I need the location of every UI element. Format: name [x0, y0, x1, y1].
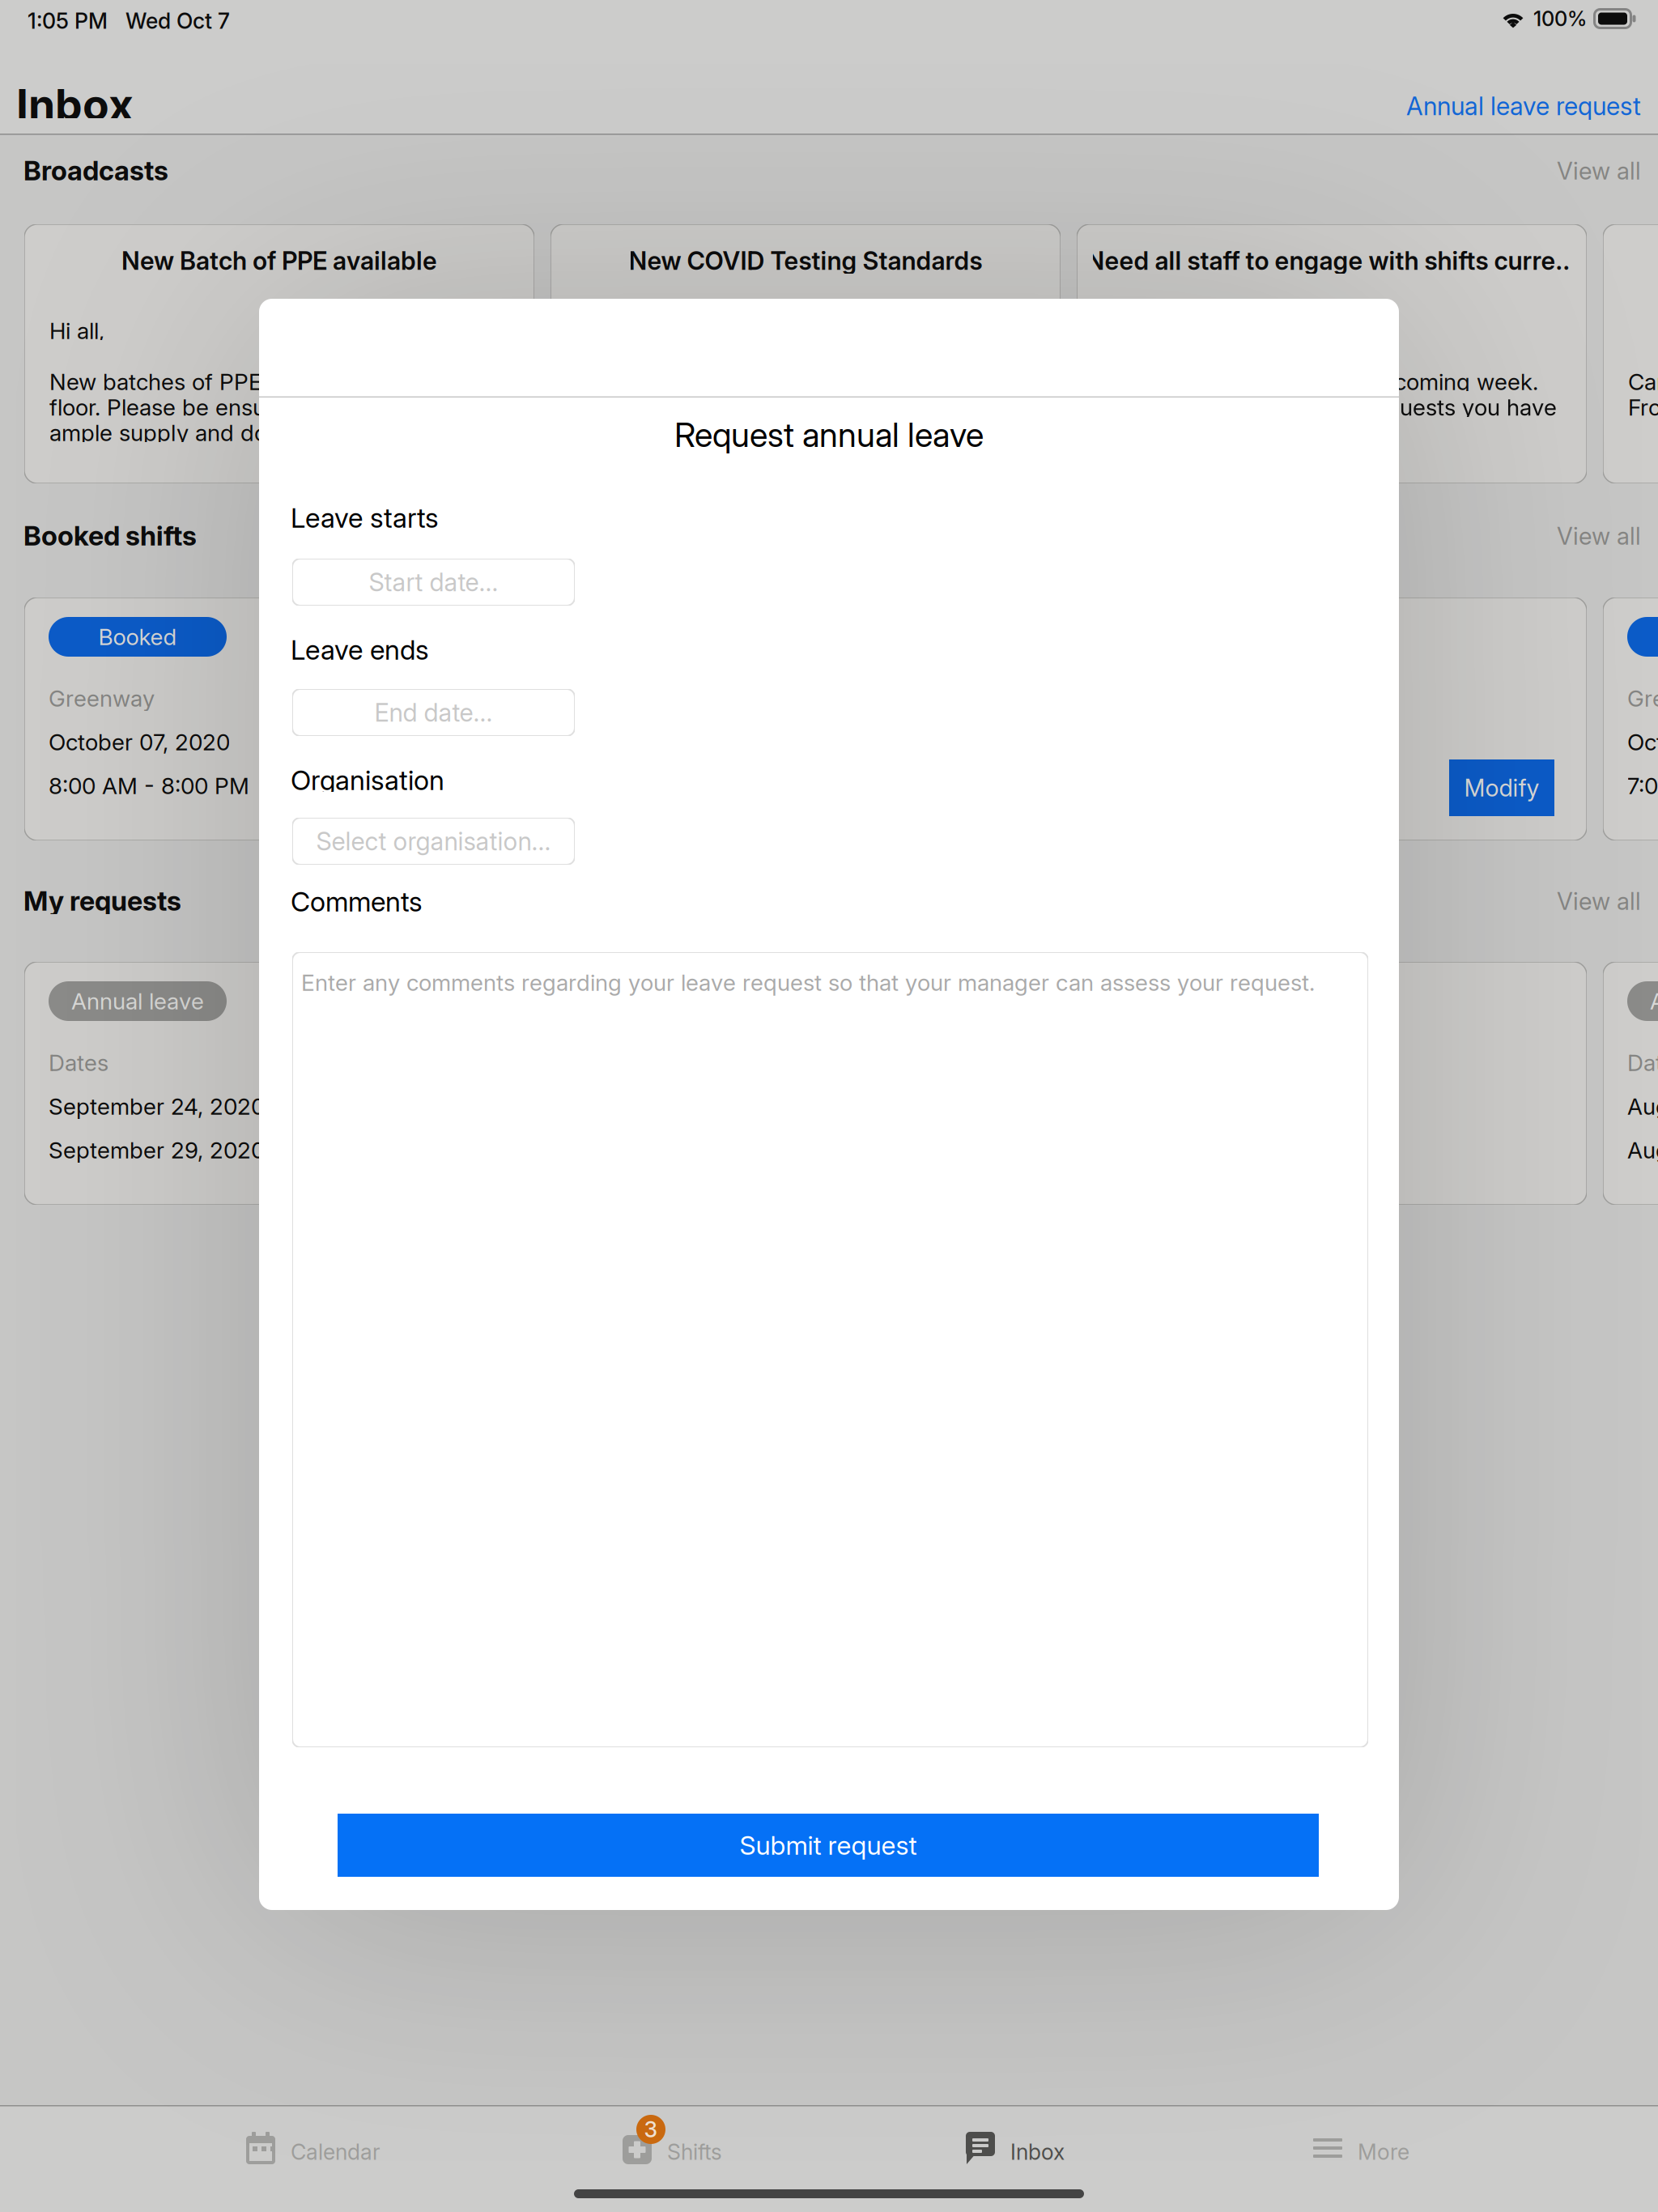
- staticText: End date...: [374, 698, 493, 727]
- staticText: August 19, 2020: [1627, 1137, 1658, 1163]
- staticText: 7:00 AM - 7:00 PM: [1627, 772, 1658, 799]
- staticText: More: [1358, 2139, 1409, 2165]
- staticText: Start date...: [369, 567, 498, 597]
- staticText: Booked shifts: [23, 520, 197, 552]
- staticText: October 07, 2020: [49, 729, 230, 755]
- button[interactable]: New COVID Testing Standards: [551, 224, 1061, 483]
- button[interactable]: Submit request: [338, 1814, 1319, 1877]
- button[interactable]: Start date...: [292, 559, 575, 606]
- staticText: Annual leave: [597, 988, 730, 1015]
- button[interactable]: View all: [1511, 522, 1641, 550]
- staticText: Leave starts: [291, 502, 439, 534]
- staticText: Annual leave: [1650, 988, 1658, 1015]
- staticText: Comments: [291, 886, 423, 918]
- staticText: Hi all,: [49, 317, 104, 344]
- staticText: Select organisation...: [316, 827, 551, 856]
- staticText: floor. Please be ensur: [49, 394, 274, 421]
- button[interactable]: Booked: [1603, 598, 1658, 840]
- staticText: Inbox: [16, 79, 134, 130]
- button[interactable]: Annual leave: [1603, 962, 1658, 1205]
- button[interactable]: Calendar: [246, 2110, 381, 2178]
- button[interactable]: Annual leave: [24, 962, 534, 1205]
- staticText: View all: [1557, 887, 1641, 915]
- staticText: September 24, 2020: [49, 1093, 265, 1120]
- button[interactable]: New Batch of PPE available: [24, 224, 534, 483]
- staticText: Modify: [1464, 774, 1539, 802]
- staticText: My requests: [23, 885, 181, 917]
- staticText: 100%: [1533, 7, 1587, 31]
- staticText: 1:05 PM: [28, 8, 108, 34]
- button[interactable]: End date...: [292, 689, 575, 736]
- staticText: ample supply and do: [49, 419, 267, 446]
- staticText: Calendar: [291, 2139, 380, 2165]
- button[interactable]: Booked: [1077, 598, 1587, 840]
- button[interactable]: Need all staff to engage with shifts cur…: [1077, 224, 1587, 483]
- staticText: Leave ends: [291, 634, 429, 666]
- button[interactable]: Annual leave: [551, 962, 1061, 1205]
- button[interactable]: Select organisation...: [292, 818, 575, 865]
- staticText: Inbox: [1010, 2139, 1065, 2165]
- staticText: Organisation: [291, 764, 444, 796]
- staticText: Submit request: [740, 1830, 917, 1861]
- staticText: 8:00 AM - 8:00 PM: [49, 772, 249, 799]
- button[interactable]: 3: [623, 2110, 726, 2178]
- button[interactable]: View all: [1511, 887, 1641, 915]
- staticText: Shifts: [667, 2139, 722, 2165]
- staticText: New COVID Testing Standards: [629, 246, 982, 275]
- staticText: September 29, 2020: [49, 1137, 265, 1163]
- staticText: Enter any comments regarding your leave …: [301, 969, 1315, 996]
- staticText: Greenway: [49, 685, 155, 712]
- staticText: Annual leave: [71, 988, 204, 1015]
- staticText: August 14, 2020: [1627, 1093, 1658, 1120]
- staticText: Annual leave request: [1406, 91, 1641, 121]
- staticText: Need all staff to engage with shifts cur…: [1086, 246, 1577, 275]
- staticText: View all: [1557, 522, 1641, 550]
- staticText: Tell your manager of any requests you ha…: [1102, 394, 1557, 421]
- staticText: New Batch of PPE available: [121, 246, 437, 275]
- staticText: Booked: [98, 623, 177, 650]
- staticText: October 12, 2020: [1627, 729, 1658, 755]
- staticText: Annual leave: [1132, 988, 1265, 1015]
- staticText: Dates: [49, 1049, 108, 1076]
- staticText: From the 7th of October.: [1628, 394, 1658, 421]
- button[interactable]: Care home visiting hours: [1603, 224, 1658, 483]
- staticText: New batches of PPE a: [49, 368, 281, 395]
- button[interactable]: Annual leave request: [1398, 92, 1641, 120]
- button[interactable]: Inbox: [966, 2110, 1067, 2178]
- staticText: Greenway: [1627, 685, 1658, 712]
- staticText: Broadcasts: [23, 155, 168, 186]
- button[interactable]: Booked: [24, 598, 534, 840]
- button[interactable]: Annual leave: [1077, 962, 1587, 1205]
- staticText: Can all staff please note the new hours: [1628, 368, 1658, 395]
- button[interactable]: More: [1313, 2110, 1411, 2178]
- staticText: Wed Oct 7: [125, 8, 230, 34]
- staticText: 3: [644, 2117, 658, 2142]
- button[interactable]: Modify: [1449, 759, 1554, 816]
- staticText: View all: [1557, 157, 1641, 185]
- staticText: Dates: [1627, 1049, 1658, 1076]
- button[interactable]: View all: [1511, 157, 1641, 185]
- staticText: Please check the rota for upcoming week.: [1102, 368, 1538, 395]
- staticText: Request annual leave: [674, 415, 984, 455]
